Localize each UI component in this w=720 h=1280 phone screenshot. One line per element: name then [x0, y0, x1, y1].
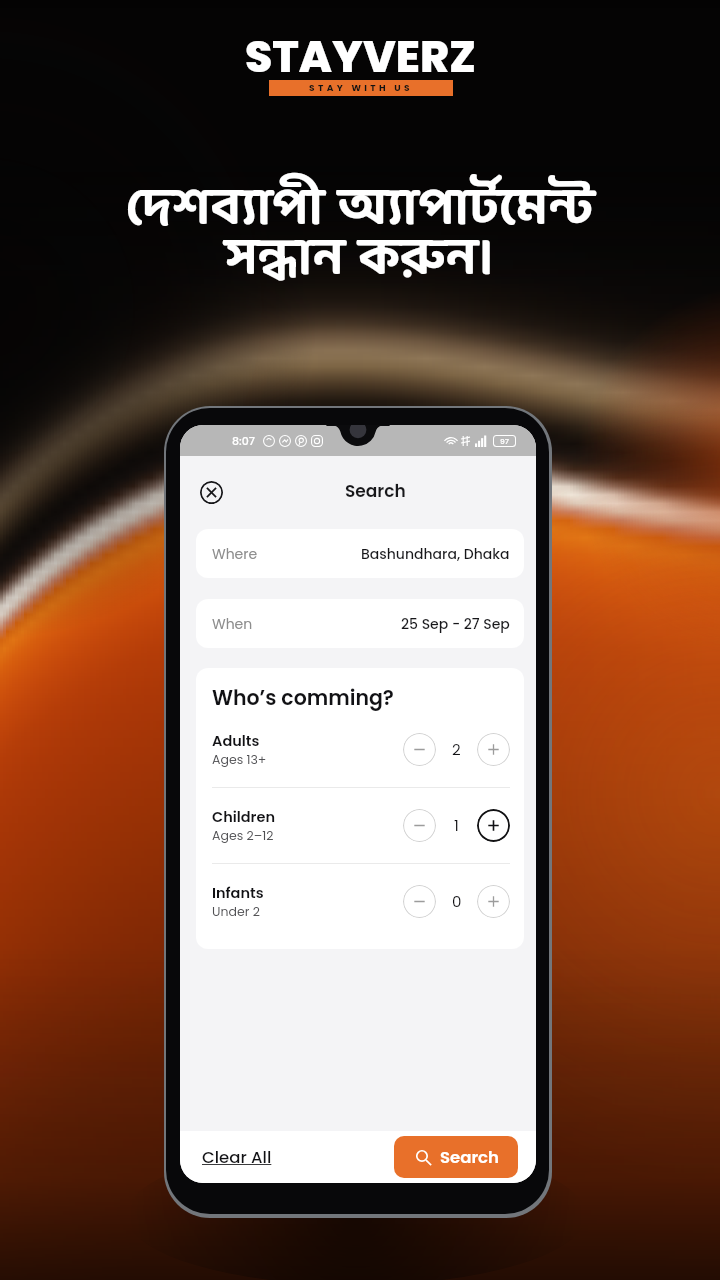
button[interactable]: Increase: [477, 809, 510, 842]
button[interactable]: Decrease: [403, 809, 436, 842]
staticText: Search: [440, 1146, 499, 1169]
button[interactable]: Clear All: [202, 1146, 272, 1169]
staticText: 2: [452, 739, 461, 760]
button[interactable]: Decrease: [403, 885, 436, 918]
staticText: Adults: [212, 731, 260, 751]
button[interactable]: When: [196, 599, 524, 648]
button[interactable]: Increase: [477, 733, 510, 766]
button[interactable]: Close: [200, 481, 223, 504]
staticText: Who’s comming?: [212, 683, 394, 712]
staticText: Ages 2–12: [212, 827, 274, 844]
staticText: Under 2: [212, 903, 260, 920]
staticText: 8:07: [232, 433, 255, 448]
staticText: Infants: [212, 883, 264, 903]
staticText: দেশব্যাপী অ্যাপার্টমেন্ট সন্ধান করুন।: [126, 166, 594, 303]
button[interactable]: Where: [196, 529, 524, 578]
staticText: 25 Sep - 27 Sep: [401, 614, 510, 634]
staticText: STAYVERZ: [245, 26, 476, 88]
staticText: 97: [500, 436, 509, 446]
staticText: When: [212, 614, 253, 634]
button[interactable]: Decrease: [403, 733, 436, 766]
staticText: Search: [345, 479, 406, 503]
staticText: Ages 13+: [212, 751, 267, 768]
staticText: STAY WITH US: [309, 82, 414, 95]
button[interactable]: Search: [394, 1136, 518, 1178]
staticText: 1: [454, 815, 459, 836]
staticText: Bashundhara, Dhaka: [361, 544, 510, 564]
staticText: Children: [212, 807, 276, 827]
staticText: Where: [212, 544, 258, 564]
staticText: 0: [452, 891, 462, 912]
button[interactable]: Increase: [477, 885, 510, 918]
